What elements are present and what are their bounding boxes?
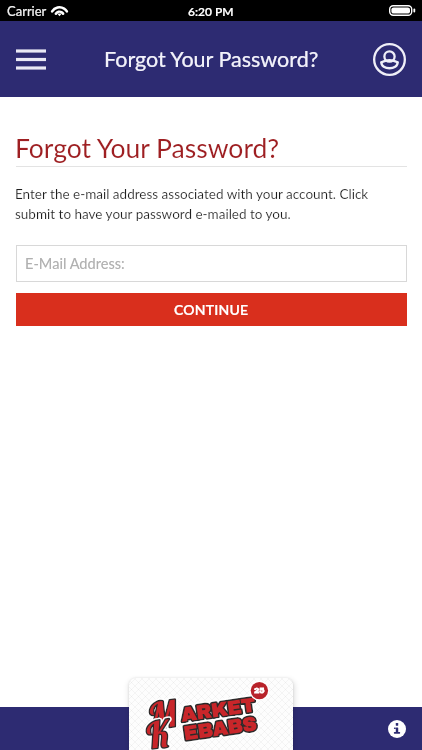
button[interactable]: Open navigation menu: [8, 36, 54, 82]
button[interactable]: Account: [367, 37, 411, 81]
staticText: Enter the e-mail address associated with…: [15, 186, 387, 222]
staticText: Carrier: [7, 3, 47, 19]
staticText: Forgot Your Password?: [15, 132, 280, 164]
staticText: 6:20 PM: [188, 4, 234, 18]
staticText: CONTINUE: [174, 301, 249, 318]
button[interactable]: Market Kebabs home: [129, 678, 293, 750]
button[interactable]: Information: [380, 712, 414, 746]
button[interactable]: CONTINUE: [16, 293, 407, 326]
staticText: E-Mail Address:: [25, 255, 125, 273]
button[interactable]: E-Mail Address:: [16, 245, 407, 282]
staticText: Forgot Your Password?: [104, 46, 319, 72]
